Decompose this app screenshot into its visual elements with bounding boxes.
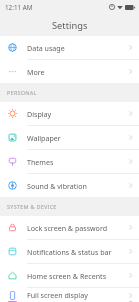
button[interactable]: Lock screen and password bbox=[0, 216, 139, 239]
other: Full screen display bbox=[8, 291, 17, 300]
other: Display bbox=[8, 109, 17, 118]
other: Themes bbox=[8, 157, 17, 166]
button[interactable]: Data usage bbox=[0, 36, 139, 59]
button[interactable]: Wallpaper bbox=[0, 126, 139, 149]
other: Data usage bbox=[8, 43, 17, 52]
staticText: Wallpaper bbox=[27, 133, 129, 143]
button[interactable]: Sound and vibration bbox=[0, 174, 139, 197]
other: Wallpaper bbox=[8, 133, 17, 142]
button[interactable]: Notifications and status bar bbox=[0, 240, 139, 263]
staticText: Sound & vibration bbox=[27, 181, 129, 191]
other: Lock screen and password bbox=[8, 223, 17, 232]
other: Sound and vibration bbox=[8, 181, 17, 190]
staticText: Lock screen & password bbox=[27, 223, 129, 233]
staticText: Home screen & Recents bbox=[27, 271, 129, 281]
staticText: Settings bbox=[52, 19, 88, 32]
staticText: Notifications & status bar bbox=[27, 247, 129, 257]
button[interactable]: Themes bbox=[0, 150, 139, 173]
staticText: 12:11 AM bbox=[5, 3, 33, 12]
staticText: Themes bbox=[27, 157, 129, 167]
other: Home screen and Recents bbox=[8, 271, 17, 280]
staticText: SYSTEM & DEVICE bbox=[7, 203, 57, 210]
button[interactable]: Display bbox=[0, 102, 139, 125]
button[interactable]: Home screen and Recents bbox=[0, 264, 139, 287]
staticText: Display bbox=[27, 109, 129, 119]
staticText: PERSONAL bbox=[7, 89, 37, 96]
staticText: Data usage bbox=[27, 43, 129, 53]
button[interactable]: Full screen display bbox=[0, 288, 139, 302]
other: More bbox=[8, 67, 17, 76]
button[interactable]: More bbox=[0, 60, 139, 83]
staticText: More bbox=[27, 67, 129, 77]
other: Notifications and status bar bbox=[8, 247, 17, 256]
staticText: Full screen display bbox=[27, 290, 129, 300]
